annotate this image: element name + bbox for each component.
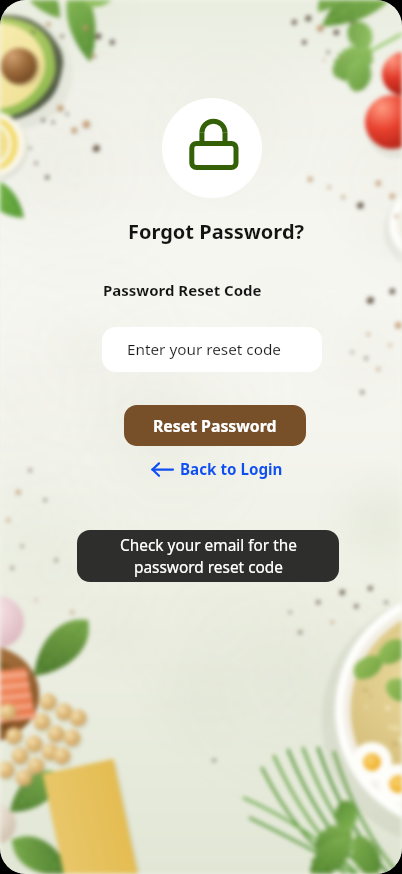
staticText: Check your email for the password reset … [116,535,301,578]
other: Password lock [162,98,262,198]
staticText: Enter your reset code [127,339,281,360]
button[interactable]: Back to Login [151,458,283,480]
staticText: Forgot Password? [128,218,305,245]
button[interactable]: Reset Password [124,405,306,446]
staticText: Reset Password [153,415,277,437]
staticText: Password Reset Code [103,280,262,300]
button[interactable]: Enter your reset code [102,327,322,372]
staticText: Back to Login [180,459,283,480]
